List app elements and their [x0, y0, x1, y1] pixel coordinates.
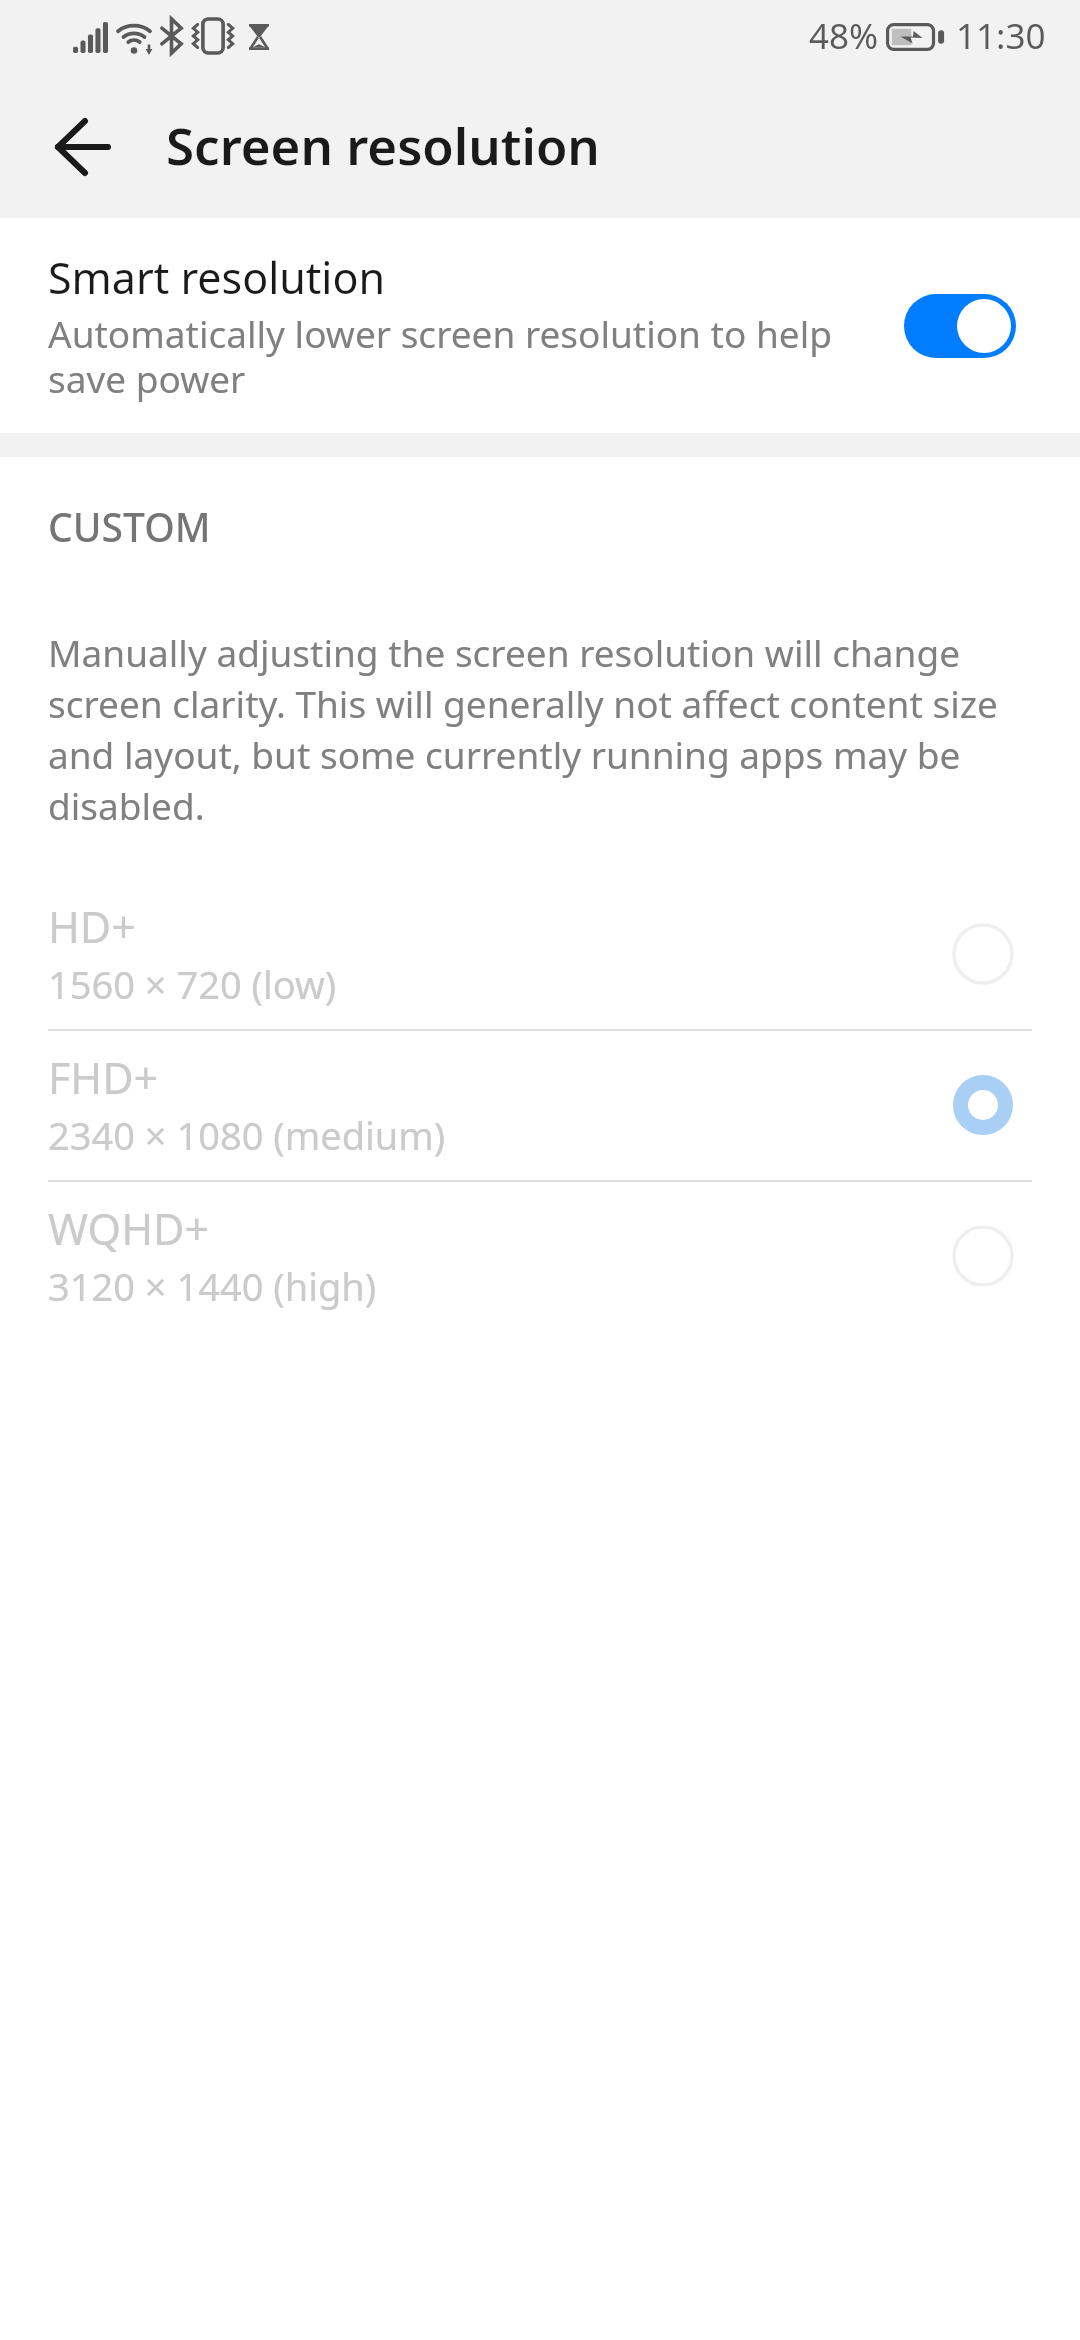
staticText: WQHD+ [48, 1199, 209, 1258]
other: FHD+ selected [951, 1073, 1015, 1137]
staticText: 1560 × 720 (low) [48, 958, 337, 1010]
staticText: 11:30 [956, 12, 1046, 60]
staticText: 3120 × 1440 (high) [48, 1260, 377, 1312]
button[interactable]: Smart resolution [0, 218, 1080, 433]
staticText: Smart resolution [48, 248, 386, 307]
button[interactable]: FHD+ [0, 1031, 1080, 1180]
staticText: FHD+ [48, 1048, 159, 1107]
button[interactable]: WQHD+ [0, 1182, 1080, 1331]
other: HD+ [951, 922, 1015, 986]
staticText: CUSTOM [48, 500, 211, 553]
button[interactable]: HD+ [0, 880, 1080, 1029]
staticText: 2340 × 1080 (medium) [48, 1109, 446, 1161]
staticText: Manually adjusting the screen resolution… [48, 627, 1008, 831]
staticText: 48% [809, 12, 879, 60]
staticText: Automatically lower screen resolution to… [48, 308, 848, 404]
staticText: Screen resolution [166, 110, 600, 179]
other: WQHD+ [951, 1224, 1015, 1288]
button[interactable]: Smart resolution, on [904, 294, 1016, 358]
staticText: HD+ [48, 897, 136, 956]
button[interactable]: Back [35, 99, 131, 195]
